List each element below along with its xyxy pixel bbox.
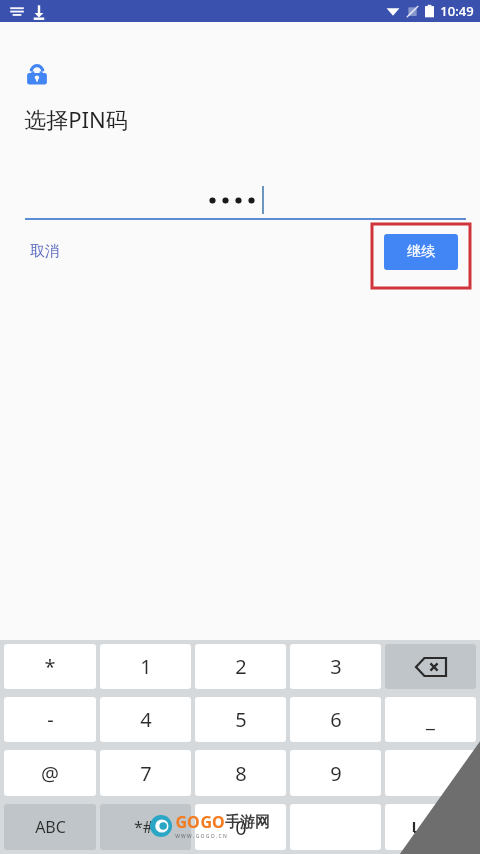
button[interactable]: Space bbox=[385, 804, 476, 850]
button[interactable]: 0 bbox=[195, 804, 286, 850]
staticText: 3 bbox=[330, 653, 342, 680]
button[interactable]: 继续 bbox=[384, 234, 458, 270]
staticText: 5 bbox=[235, 706, 247, 733]
staticText: 7 bbox=[140, 760, 152, 787]
button[interactable]: 取消 bbox=[22, 236, 68, 267]
staticText: 选择PIN码 bbox=[24, 104, 128, 134]
button[interactable]: - bbox=[4, 697, 96, 742]
staticText: _ bbox=[426, 706, 435, 733]
button[interactable]: 2 bbox=[195, 644, 286, 689]
staticText: W W W . G O G O . C N bbox=[175, 833, 227, 840]
staticText: 6 bbox=[330, 706, 342, 733]
button[interactable]: *#( bbox=[100, 804, 191, 850]
button[interactable]: 9 bbox=[290, 750, 381, 796]
button[interactable]: 3 bbox=[290, 644, 381, 689]
staticText: 9 bbox=[330, 760, 342, 787]
button[interactable] bbox=[385, 750, 476, 796]
staticText: 10:49 bbox=[440, 2, 474, 20]
staticText: - bbox=[47, 706, 54, 733]
staticText: *#( bbox=[134, 816, 158, 838]
staticText: * bbox=[44, 653, 56, 680]
staticText: 0 bbox=[235, 814, 247, 841]
staticText: @ bbox=[41, 760, 59, 787]
staticText: 1 bbox=[140, 653, 152, 680]
staticText: 8 bbox=[235, 760, 247, 787]
button[interactable]: 7 bbox=[100, 750, 191, 796]
button[interactable]: 6 bbox=[290, 697, 381, 742]
button[interactable]: * bbox=[4, 644, 96, 689]
staticText: GO bbox=[200, 811, 225, 833]
staticText: ABC bbox=[35, 816, 66, 838]
button[interactable]: ABC bbox=[4, 804, 96, 850]
button[interactable]: 4 bbox=[100, 697, 191, 742]
staticText: 手游网 bbox=[225, 813, 270, 832]
button[interactable]: 1 bbox=[100, 644, 191, 689]
staticText: GO bbox=[175, 811, 200, 833]
button[interactable]: @ bbox=[4, 750, 96, 796]
button[interactable]: Backspace bbox=[385, 644, 476, 689]
staticText: 2 bbox=[235, 653, 247, 680]
button[interactable]: 5 bbox=[195, 697, 286, 742]
button[interactable]: _ bbox=[385, 697, 476, 742]
staticText: 继续 bbox=[407, 243, 435, 261]
staticText: 4 bbox=[140, 706, 152, 733]
staticText: 取消 bbox=[30, 242, 60, 261]
button[interactable]: 8 bbox=[195, 750, 286, 796]
